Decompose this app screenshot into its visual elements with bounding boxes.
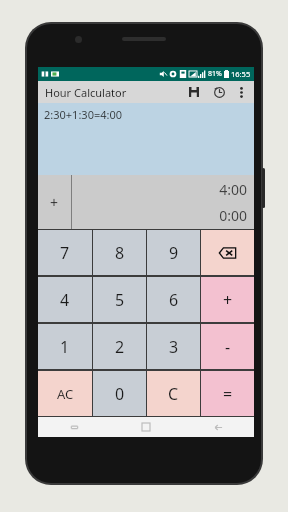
staticText: + — [223, 289, 233, 311]
button[interactable]: Recents — [38, 417, 110, 437]
button[interactable]: Save — [185, 83, 203, 101]
button[interactable]: 2 — [93, 324, 146, 369]
button[interactable]: Back — [182, 417, 254, 437]
staticText: 0:00 — [72, 206, 247, 225]
button[interactable]: Backspace — [201, 230, 254, 275]
button[interactable]: 4 — [38, 277, 92, 322]
staticText: 4:00 — [72, 180, 247, 199]
button[interactable]: Home — [110, 417, 182, 437]
staticText: 4 — [60, 289, 70, 311]
staticText: 0 — [115, 383, 125, 405]
staticText: 81% — [208, 69, 222, 79]
staticText: AC — [57, 385, 74, 403]
button[interactable]: 1 — [38, 324, 92, 369]
button[interactable]: 5 — [93, 277, 146, 322]
button[interactable]: 7 — [38, 230, 92, 275]
button[interactable]: More options — [233, 84, 249, 100]
staticText: + — [50, 193, 59, 212]
staticText: 2 — [115, 336, 125, 358]
button[interactable]: + — [201, 277, 254, 322]
button[interactable]: 6 — [147, 277, 200, 322]
staticText: 1 — [60, 336, 70, 358]
button[interactable]: = — [201, 371, 254, 416]
staticText: 16:55 — [231, 69, 251, 79]
staticText: - — [225, 336, 231, 358]
staticText: = — [223, 383, 233, 405]
button[interactable]: 0 — [93, 371, 146, 416]
button[interactable]: - — [201, 324, 254, 369]
button[interactable]: 9 — [147, 230, 200, 275]
button[interactable]: AC — [38, 371, 92, 416]
button[interactable]: C — [147, 371, 200, 416]
button[interactable]: 8 — [93, 230, 146, 275]
staticText: 3 — [169, 336, 179, 358]
staticText: 2:30+1:30=4:00 — [44, 107, 123, 122]
staticText: 6 — [169, 289, 179, 311]
staticText: 5 — [115, 289, 125, 311]
staticText: 7 — [60, 242, 70, 264]
staticText: 8 — [115, 242, 125, 264]
staticText: Hour Calculator — [45, 85, 127, 100]
button[interactable]: + — [38, 175, 71, 229]
button[interactable]: 3 — [147, 324, 200, 369]
button[interactable]: History — [210, 83, 228, 101]
staticText: C — [168, 383, 179, 405]
staticText: 9 — [169, 242, 179, 264]
